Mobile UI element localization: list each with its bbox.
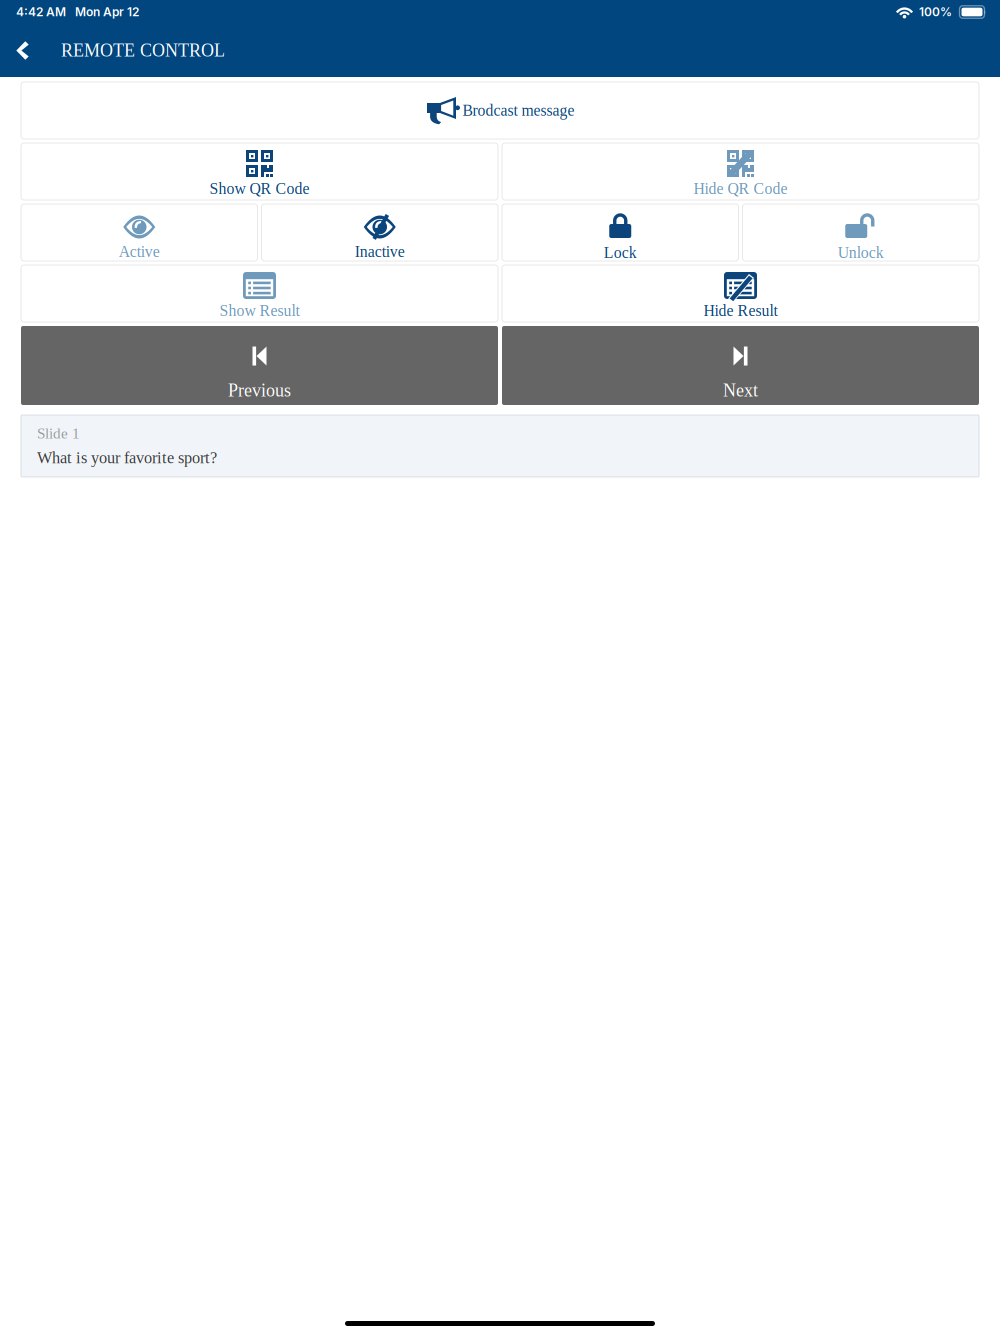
staticText: Unlock	[838, 244, 884, 261]
button[interactable]: Hide QR Code	[502, 143, 979, 200]
staticText: Inactive	[355, 243, 405, 260]
staticText: 4:42 AM Mon Apr 12	[16, 5, 139, 19]
staticText: Brodcast message	[462, 102, 574, 119]
staticText: Show QR Code	[209, 180, 309, 197]
staticText: Show Result	[219, 302, 299, 319]
button[interactable]: Previous	[21, 326, 498, 405]
button[interactable]: Hide Result	[502, 265, 979, 322]
button[interactable]: Active	[21, 204, 257, 261]
button[interactable]: Show Result	[21, 265, 498, 322]
staticText: 100%	[913, 5, 958, 19]
staticText: Active	[119, 243, 160, 260]
button[interactable]: Lock	[502, 204, 738, 261]
staticText: Hide Result	[703, 302, 777, 319]
button[interactable]: Inactive	[261, 204, 498, 261]
staticText: What is your favorite sport?	[37, 449, 217, 467]
staticText: Next	[723, 380, 758, 400]
staticText: Lock	[604, 244, 637, 261]
button[interactable]: Next	[502, 326, 979, 405]
staticText: Hide QR Code	[693, 180, 787, 197]
button[interactable]: Back	[0, 24, 45, 77]
staticText: Slide 1	[37, 425, 80, 442]
button[interactable]: Show QR Code	[21, 143, 498, 200]
button[interactable]: Brodcast message	[21, 82, 979, 139]
staticText: Previous	[228, 380, 291, 400]
button[interactable]: Unlock	[742, 204, 979, 261]
staticText: REMOTE CONTROL	[61, 40, 225, 60]
